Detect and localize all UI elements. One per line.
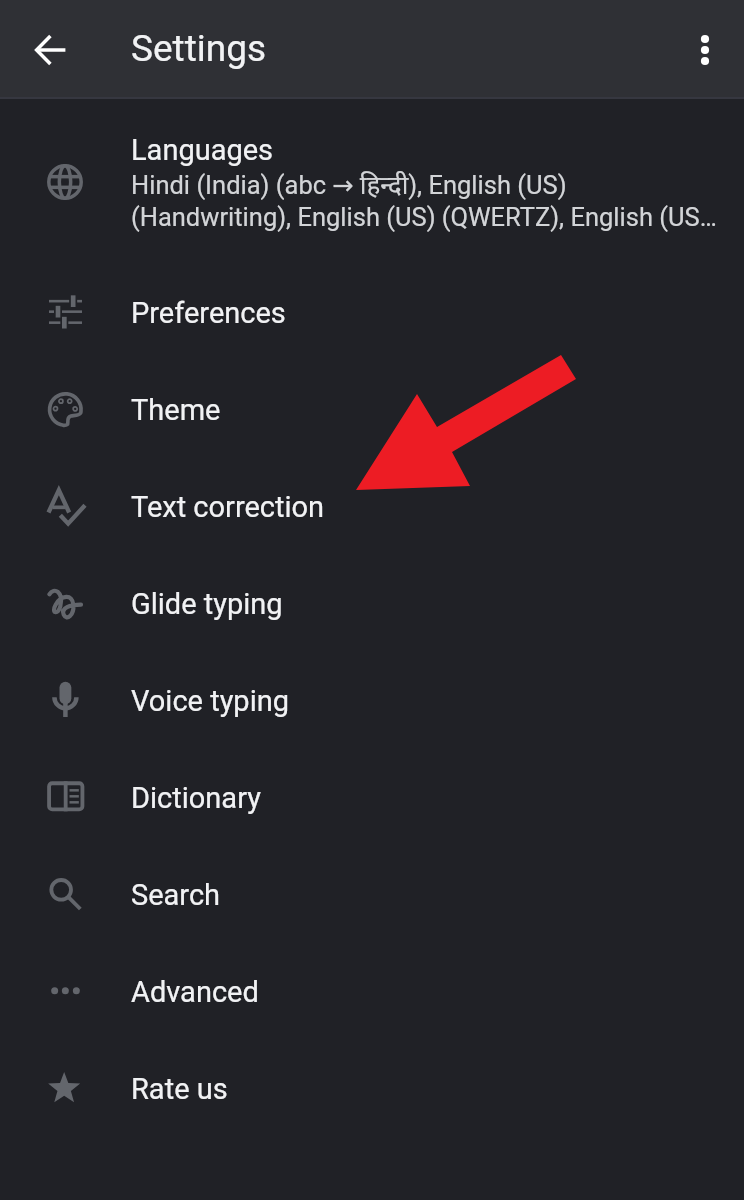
button[interactable]: More options: [683, 28, 727, 72]
button[interactable]: Voice typing: [0, 652, 744, 749]
button[interactable]: Languages: [0, 133, 744, 264]
button[interactable]: Search: [0, 846, 744, 943]
button[interactable]: Text correction: [0, 458, 744, 555]
staticText: Text correction: [131, 490, 325, 524]
button[interactable]: Dictionary: [0, 749, 744, 846]
staticText: Rate us: [131, 1072, 228, 1106]
button[interactable]: Navigate up: [22, 21, 80, 79]
staticText: Search: [131, 878, 221, 912]
staticText: Dictionary: [131, 781, 261, 815]
button[interactable]: Theme: [0, 361, 744, 458]
staticText: Languages: [131, 133, 274, 167]
staticText: Glide typing: [131, 587, 283, 621]
staticText: Voice typing: [131, 684, 289, 718]
button[interactable]: Glide typing: [0, 555, 744, 652]
staticText: Settings: [131, 27, 267, 70]
staticText: Advanced: [131, 975, 259, 1009]
staticText: Preferences: [131, 296, 286, 330]
staticText: Hindi (India) (abc → हिन्दी), English (U…: [131, 167, 727, 232]
button[interactable]: Rate us: [0, 1040, 744, 1137]
button[interactable]: Preferences: [0, 264, 744, 361]
button[interactable]: Advanced: [0, 943, 744, 1040]
staticText: Theme: [131, 393, 221, 427]
